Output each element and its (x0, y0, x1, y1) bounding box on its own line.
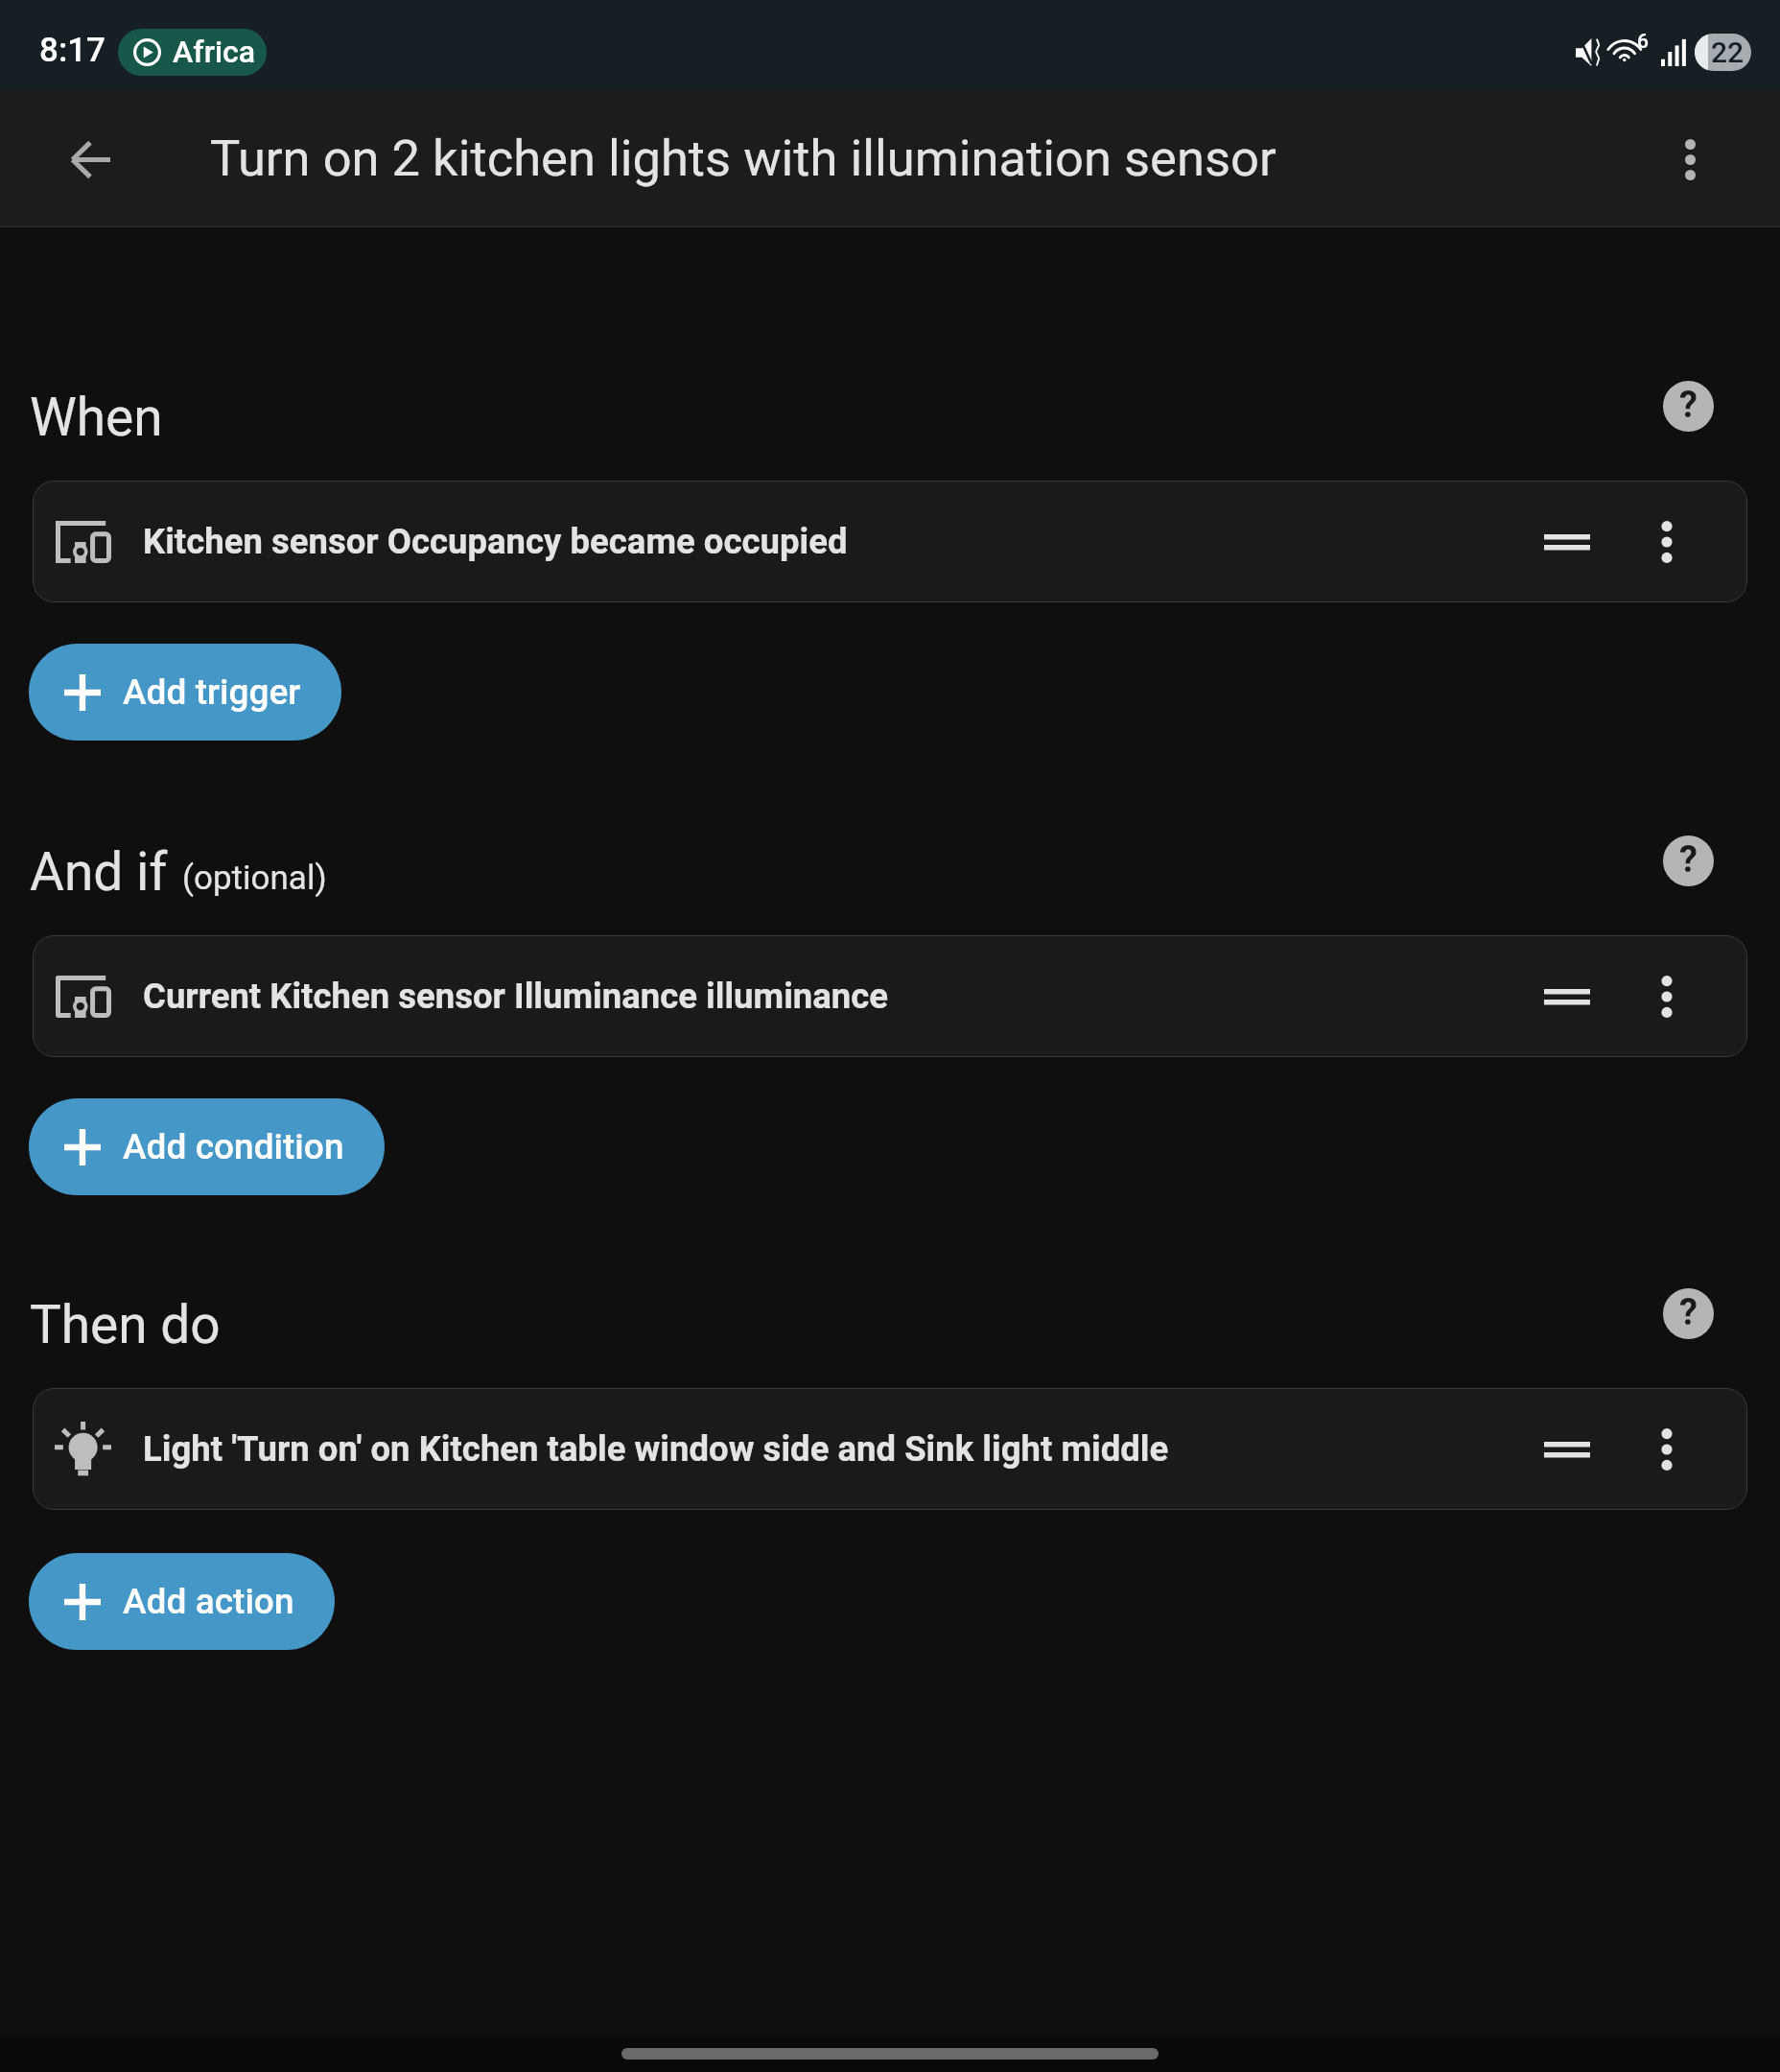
button[interactable]: Kitchen sensor Occupancy became occupied (33, 481, 1747, 602)
button[interactable]: Current Kitchen sensor Illuminance illum… (33, 935, 1747, 1057)
staticText: Africa (173, 34, 256, 70)
button[interactable]: Reorder (1525, 1417, 1609, 1482)
staticText: ? (1679, 1291, 1698, 1334)
staticText: 8:17 (39, 31, 105, 70)
button[interactable]: Add condition (29, 1098, 385, 1195)
staticText: Kitchen sensor Occupancy became occupied (143, 521, 848, 562)
button[interactable]: Reorder (1525, 964, 1609, 1029)
button[interactable]: More options (1650, 119, 1730, 200)
staticText: 6 (1637, 30, 1649, 54)
staticText: ? (1679, 384, 1698, 427)
staticText: (optional) (182, 859, 327, 898)
staticText: Add action (123, 1581, 294, 1622)
staticText: When (30, 387, 163, 448)
button[interactable]: Reorder (1525, 509, 1609, 575)
button[interactable]: Add action (29, 1553, 335, 1650)
staticText: Current Kitchen sensor Illuminance illum… (143, 976, 889, 1017)
staticText: Turn on 2 kitchen lights with illuminati… (210, 129, 1276, 188)
staticText: Add trigger (123, 671, 301, 713)
button[interactable]: Africa recording (118, 29, 267, 76)
button[interactable]: More options (1628, 1411, 1705, 1488)
staticText: ? (1679, 838, 1698, 882)
button[interactable]: Add trigger (29, 644, 341, 741)
button[interactable]: Help (1663, 1288, 1714, 1339)
staticText: Add condition (123, 1126, 344, 1167)
button[interactable]: Light 'Turn on' on Kitchen table window … (33, 1388, 1747, 1510)
button[interactable]: Back (48, 117, 132, 201)
button[interactable]: Help (1663, 836, 1714, 886)
button[interactable]: Help (1663, 381, 1714, 432)
staticText: 22 (1711, 35, 1745, 69)
button[interactable]: More options (1628, 504, 1705, 580)
staticText: And if (30, 841, 168, 903)
button[interactable]: More options (1628, 958, 1705, 1035)
staticText: Then do (30, 1294, 221, 1355)
staticText: Light 'Turn on' on Kitchen table window … (143, 1428, 1169, 1470)
